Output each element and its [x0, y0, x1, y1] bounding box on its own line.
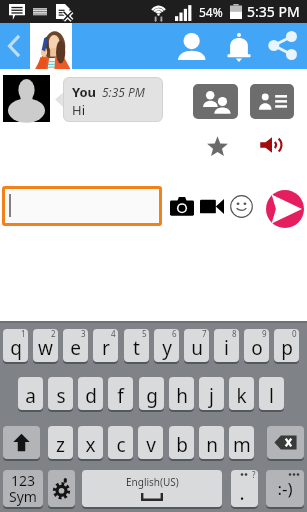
staticText: a — [25, 383, 36, 409]
staticText: f — [117, 383, 124, 409]
staticText: Hi — [72, 101, 85, 119]
button[interactable]: o — [244, 329, 269, 362]
button[interactable]: Notifications — [227, 32, 251, 62]
button[interactable]: r — [93, 329, 118, 362]
staticText: 0 — [292, 329, 297, 339]
staticText: 7 — [202, 329, 207, 339]
staticText: l — [269, 383, 274, 409]
button[interactable]: z — [48, 426, 73, 459]
button[interactable]: Share — [268, 31, 297, 60]
button[interactable] — [2, 186, 162, 226]
staticText: p — [281, 335, 293, 361]
staticText: u — [191, 335, 203, 361]
button[interactable]: l — [259, 377, 284, 410]
button[interactable]: English(US) — [82, 470, 222, 507]
staticText: d — [85, 383, 97, 409]
staticText: q — [10, 335, 22, 361]
button[interactable]: u — [184, 329, 209, 362]
staticText: j — [209, 383, 214, 409]
staticText: w — [38, 335, 53, 361]
button[interactable]: Profile — [178, 33, 207, 60]
staticText: b — [176, 432, 188, 458]
staticText: r — [102, 335, 110, 361]
staticText: . — [239, 480, 245, 506]
button[interactable]: Contact photo — [30, 23, 72, 69]
button[interactable]: Video — [198, 193, 225, 220]
button[interactable]: Favorite — [203, 132, 231, 160]
staticText: k — [236, 383, 247, 409]
button[interactable]: y — [154, 329, 179, 362]
staticText: c — [116, 432, 126, 458]
staticText: x — [85, 432, 96, 458]
staticText: 54% — [199, 4, 223, 20]
button[interactable]: x — [78, 426, 103, 459]
button[interactable]: b — [169, 426, 194, 459]
button[interactable]: Sound — [257, 133, 285, 157]
button[interactable] — [3, 426, 40, 459]
button[interactable]: Camera — [168, 193, 195, 220]
staticText: i — [224, 335, 229, 361]
button[interactable]: Group — [193, 84, 238, 119]
staticText: s — [56, 383, 66, 409]
button[interactable]: c — [108, 426, 133, 459]
button[interactable]: :-) — [266, 470, 304, 507]
staticText: h — [176, 383, 188, 409]
button[interactable]: j — [199, 377, 224, 410]
staticText: 8 — [232, 329, 237, 339]
button[interactable] — [267, 426, 304, 459]
staticText: English(US) — [126, 475, 179, 489]
staticText: ? — [252, 470, 256, 480]
staticText: e — [70, 335, 81, 361]
button[interactable]: v — [138, 426, 163, 459]
button[interactable]: . — [231, 470, 258, 507]
button[interactable]: a — [18, 377, 43, 410]
button[interactable]: q — [3, 329, 28, 362]
button[interactable]: p — [274, 329, 299, 362]
staticText: 5:35 PM — [247, 2, 300, 21]
staticText: m — [233, 432, 251, 458]
staticText: o — [251, 335, 263, 361]
button[interactable]: k — [229, 377, 254, 410]
button[interactable]: t — [124, 329, 149, 362]
button[interactable] — [48, 470, 75, 507]
staticText: 5:35 PM — [102, 84, 145, 100]
staticText: You — [72, 83, 97, 101]
staticText: g — [146, 383, 158, 409]
button[interactable]: g — [139, 377, 164, 410]
staticText: 9 — [262, 329, 267, 339]
staticText: 4 — [111, 329, 116, 339]
button[interactable]: You — [63, 77, 163, 122]
staticText: t — [133, 335, 140, 361]
staticText: 5 — [142, 329, 147, 339]
button[interactable]: Emoji — [228, 193, 255, 220]
button[interactable]: n — [199, 426, 224, 459]
staticText: :-) — [277, 477, 293, 500]
button[interactable]: i — [214, 329, 239, 362]
button[interactable]: Send — [266, 190, 304, 228]
staticText: 1 — [21, 329, 26, 339]
button[interactable]: w — [33, 329, 58, 362]
button[interactable]: m — [229, 426, 254, 459]
button[interactable]: d — [78, 377, 103, 410]
button[interactable]: Back — [0, 23, 28, 69]
button[interactable]: 123 Sym — [3, 470, 43, 507]
staticText: 6 — [172, 329, 177, 339]
button[interactable]: s — [48, 377, 73, 410]
staticText: n — [206, 432, 218, 458]
button[interactable]: f — [108, 377, 133, 410]
staticText: y — [162, 335, 172, 361]
staticText: 123 Sym — [9, 471, 37, 506]
button[interactable]: h — [169, 377, 194, 410]
button[interactable]: Contact details — [250, 84, 294, 119]
staticText: v — [146, 432, 156, 458]
staticText: 3 — [81, 329, 86, 339]
staticText: 2 — [51, 329, 56, 339]
staticText: z — [56, 432, 65, 458]
button[interactable]: e — [63, 329, 88, 362]
